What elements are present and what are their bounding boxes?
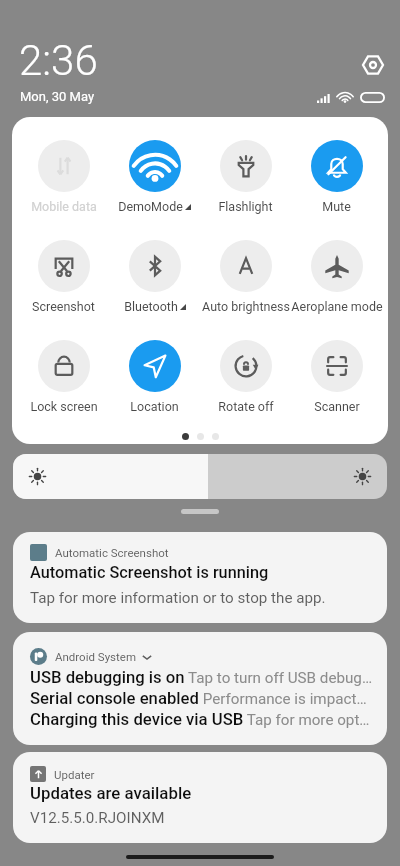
staticText: Mute bbox=[322, 199, 351, 214]
staticText: Location bbox=[130, 399, 179, 414]
button[interactable]: Mobile data bbox=[18, 117, 109, 217]
button[interactable]: Mute bbox=[291, 117, 382, 217]
staticText: USB debugging is on Tap to turn off USB … bbox=[30, 668, 373, 688]
staticText: V12.5.5.0.RJOINXM bbox=[30, 809, 165, 827]
staticText: Charging this device via USB Tap for mor… bbox=[30, 710, 370, 730]
button[interactable]: Location bbox=[109, 317, 200, 417]
staticText: Mobile data bbox=[31, 199, 97, 214]
button[interactable]: Auto brightness bbox=[200, 217, 291, 317]
staticText: Updates are available bbox=[30, 783, 192, 803]
button[interactable]: Aeroplane mode bbox=[291, 217, 382, 317]
button[interactable]: Scanner bbox=[291, 317, 382, 417]
staticText: Automatic Screenshot bbox=[55, 546, 169, 559]
button[interactable]: Lock screen bbox=[18, 317, 109, 417]
button[interactable]: Bluetooth bbox=[109, 217, 200, 317]
staticText: 2:36 bbox=[19, 36, 98, 85]
staticText: Screenshot bbox=[32, 299, 95, 314]
button[interactable]: Screenshot bbox=[18, 217, 109, 317]
staticText: DemoMode bbox=[118, 199, 183, 214]
button[interactable]: Automatic Screenshot bbox=[13, 532, 387, 623]
staticText: Serial console enabled Performance is im… bbox=[30, 689, 367, 709]
staticText: Scanner bbox=[314, 399, 360, 414]
staticText: Android System bbox=[55, 650, 136, 663]
button[interactable]: Flashlight bbox=[200, 117, 291, 217]
staticText: Lock screen bbox=[30, 399, 98, 414]
staticText: Auto brightness bbox=[202, 299, 290, 314]
staticText: Updater bbox=[54, 768, 95, 781]
staticText: Bluetooth bbox=[124, 299, 178, 314]
staticText: Aeroplane mode bbox=[291, 299, 383, 314]
button[interactable]: Brightness bbox=[13, 454, 387, 499]
staticText: Tap for more information or to stop the … bbox=[30, 589, 326, 607]
button[interactable]: DemoMode bbox=[109, 117, 200, 217]
button[interactable]: Rotate off bbox=[200, 317, 291, 417]
button[interactable]: Updater bbox=[13, 752, 387, 843]
button[interactable]: Android System bbox=[13, 632, 387, 745]
staticText: Flashlight bbox=[218, 199, 273, 214]
staticText: Rotate off bbox=[218, 399, 274, 414]
staticText: Mon, 30 May bbox=[20, 89, 95, 104]
staticText: Automatic Screenshot is running bbox=[30, 563, 269, 582]
button[interactable]: Settings bbox=[357, 49, 388, 80]
